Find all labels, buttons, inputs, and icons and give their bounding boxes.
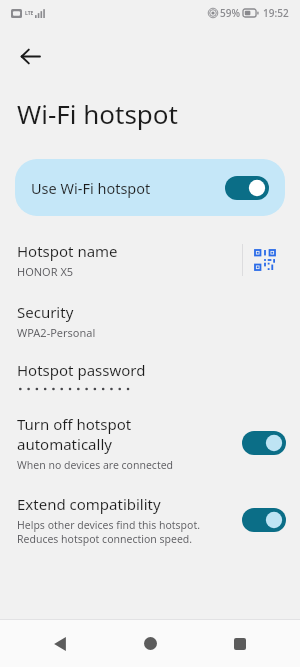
- button[interactable]: Hotspot password: [0, 360, 300, 392]
- staticText: 59%: [220, 6, 240, 20]
- button[interactable]: Share hotspot QR code: [243, 238, 287, 282]
- button[interactable]: Use Wi-Fi hotspot: [15, 159, 285, 216]
- staticText: Hotspot password: [17, 360, 146, 380]
- button[interactable]: Turn off hotspot: [0, 414, 300, 472]
- button[interactable]: Hotspot name: [0, 238, 300, 282]
- button[interactable]: Home: [120, 620, 180, 667]
- button[interactable]: Back: [30, 620, 90, 667]
- staticText: HONOR X5: [17, 264, 74, 279]
- staticText: When no devices are connected: [17, 458, 174, 472]
- staticText: Extend compatibility: [17, 494, 161, 514]
- staticText: Reduces hotspot connection speed.: [17, 532, 193, 546]
- staticText: 19:52: [263, 6, 289, 20]
- button[interactable]: Security: [0, 302, 300, 340]
- staticText: automatically: [17, 434, 112, 454]
- button[interactable]: Recent apps: [210, 620, 270, 667]
- staticText: Wi-Fi hotspot: [17, 96, 178, 131]
- staticText: LTE: [25, 10, 34, 17]
- staticText: Hotspot name: [17, 241, 118, 261]
- button[interactable]: Extend compatibility: [0, 494, 300, 546]
- staticText: Security: [17, 302, 74, 322]
- staticText: Helps other devices find this hotspot.: [17, 518, 201, 532]
- staticText: WPA2-Personal: [17, 325, 96, 340]
- button[interactable]: Back: [8, 34, 52, 78]
- staticText: Use Wi-Fi hotspot: [31, 178, 151, 198]
- staticText: Turn off hotspot: [17, 414, 132, 434]
